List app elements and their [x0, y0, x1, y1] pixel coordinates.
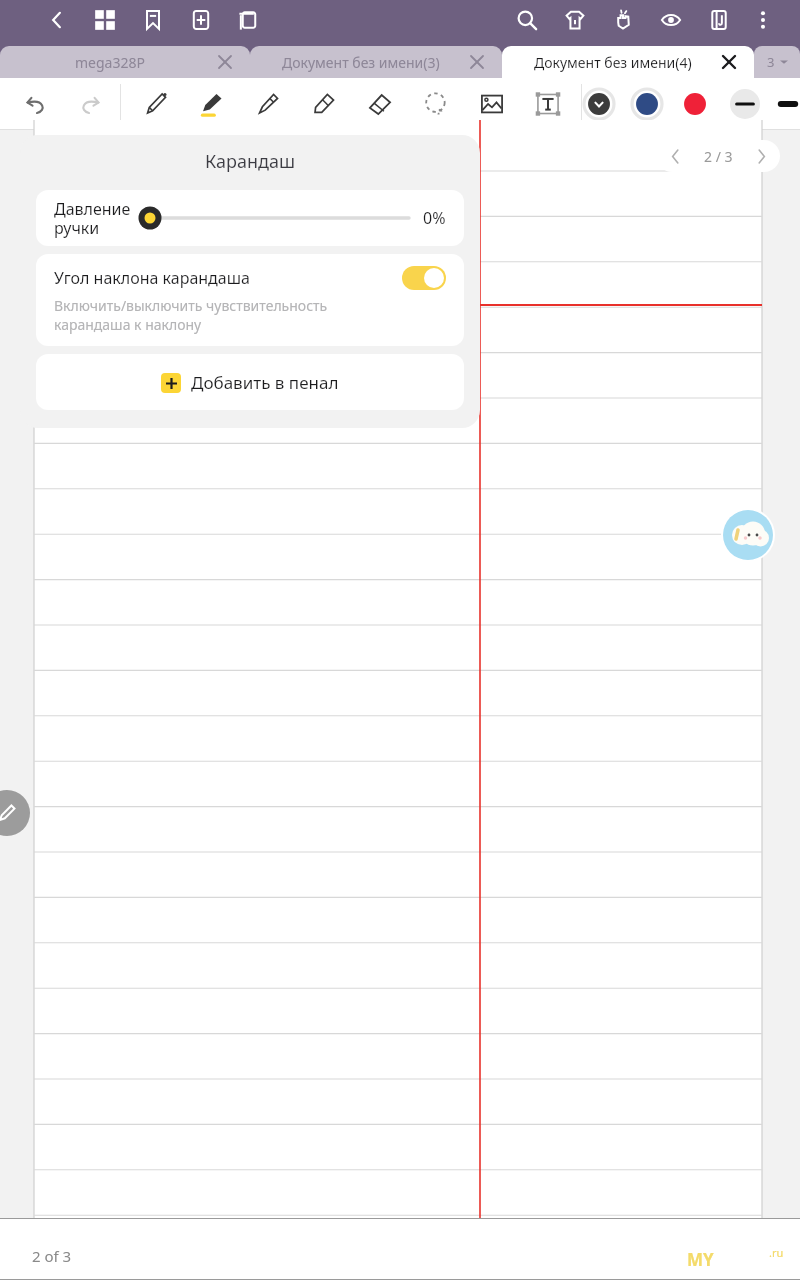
staticText: 2 / 3	[704, 147, 733, 166]
button[interactable]: Угол наклона карандаша	[36, 254, 464, 346]
staticText: mega328P	[75, 53, 145, 72]
button[interactable]: Tools drawer	[0, 790, 30, 836]
button[interactable]: Crop	[234, 5, 264, 35]
button[interactable]: Image	[475, 87, 509, 121]
button[interactable]: Pen	[139, 87, 173, 121]
button[interactable]: Close tab	[718, 51, 740, 73]
button[interactable]: Close tab	[214, 51, 236, 73]
button[interactable]: Shirt	[560, 5, 590, 35]
button[interactable]: Tilt sensitivity toggle	[402, 266, 446, 290]
button[interactable]: Grid	[90, 5, 120, 35]
button[interactable]: Colour	[678, 87, 712, 121]
button[interactable]: Добавить в пенал	[36, 354, 464, 410]
button[interactable]: Colour	[582, 87, 616, 121]
button[interactable]: View	[656, 5, 686, 35]
button[interactable]: Highlighter	[307, 87, 341, 121]
button[interactable]: Документ без имени(3)	[250, 46, 502, 78]
staticText: 2 of 3	[32, 1246, 72, 1266]
button[interactable]: Assistant	[723, 510, 773, 560]
staticText: Угол наклона карандаша	[54, 267, 402, 289]
button[interactable]: Документ без имени(4)	[502, 46, 754, 78]
button[interactable]: 3	[754, 46, 800, 78]
button[interactable]: Text	[531, 87, 565, 121]
button[interactable]: Back	[42, 5, 72, 35]
button[interactable]: Fountain pen	[251, 87, 285, 121]
button[interactable]: Stroke width	[728, 87, 762, 121]
button[interactable]: Pencil	[195, 87, 229, 121]
button[interactable]: mega328P	[0, 46, 250, 78]
button[interactable]: Add page	[186, 5, 216, 35]
button[interactable]: Давление ручки	[36, 190, 464, 246]
staticText: 0%	[423, 207, 446, 229]
staticText: Давление ручки	[54, 198, 131, 239]
staticText: Включить/выключить чувствительность кара…	[54, 296, 328, 334]
button[interactable]: Bookmark	[138, 5, 168, 35]
staticText: Карандаш	[36, 149, 464, 174]
staticText: Документ без имени(3)	[282, 53, 440, 72]
staticText: Документ без имени(4)	[534, 53, 692, 72]
button[interactable]: More options	[748, 5, 778, 35]
button[interactable]: Next page	[742, 140, 780, 172]
button[interactable]: Close tab	[466, 51, 488, 73]
button[interactable]: Colour	[630, 87, 664, 121]
button[interactable]: Redo	[72, 87, 106, 121]
button[interactable]: Undo	[20, 87, 54, 121]
button[interactable]: Layout	[704, 5, 734, 35]
button[interactable]: Hand	[608, 5, 638, 35]
staticText: .ru	[769, 1245, 784, 1260]
button[interactable]: Lasso	[419, 87, 453, 121]
button[interactable]: Previous page	[656, 140, 694, 172]
staticText: 3	[767, 53, 775, 71]
staticText: Добавить в пенал	[191, 371, 339, 394]
staticText: MY	[687, 1248, 714, 1271]
button[interactable]: Search	[512, 5, 542, 35]
button[interactable]: Stroke width	[776, 87, 800, 121]
button[interactable]: Eraser	[363, 87, 397, 121]
